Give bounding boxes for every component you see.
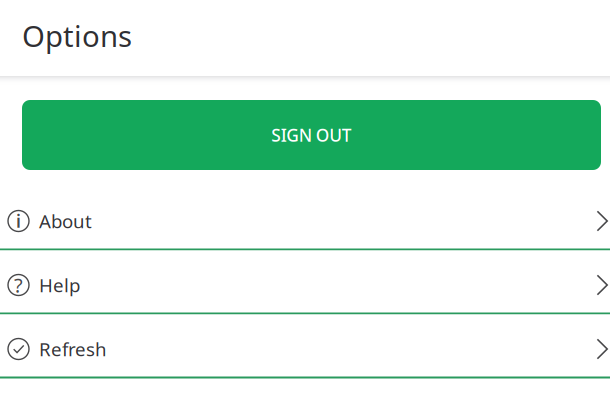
button[interactable]: i — [0, 186, 610, 250]
button[interactable]: Refresh — [0, 314, 610, 378]
staticText: SIGN OUT — [271, 123, 352, 146]
button[interactable]: SIGN OUT — [22, 100, 601, 170]
staticText: Help — [39, 273, 80, 297]
staticText: Refresh — [39, 337, 107, 361]
staticText: Options — [22, 16, 132, 55]
staticText: ? — [14, 272, 23, 298]
button[interactable]: ? — [0, 250, 610, 314]
staticText: About — [39, 209, 92, 233]
staticText: i — [16, 209, 21, 232]
